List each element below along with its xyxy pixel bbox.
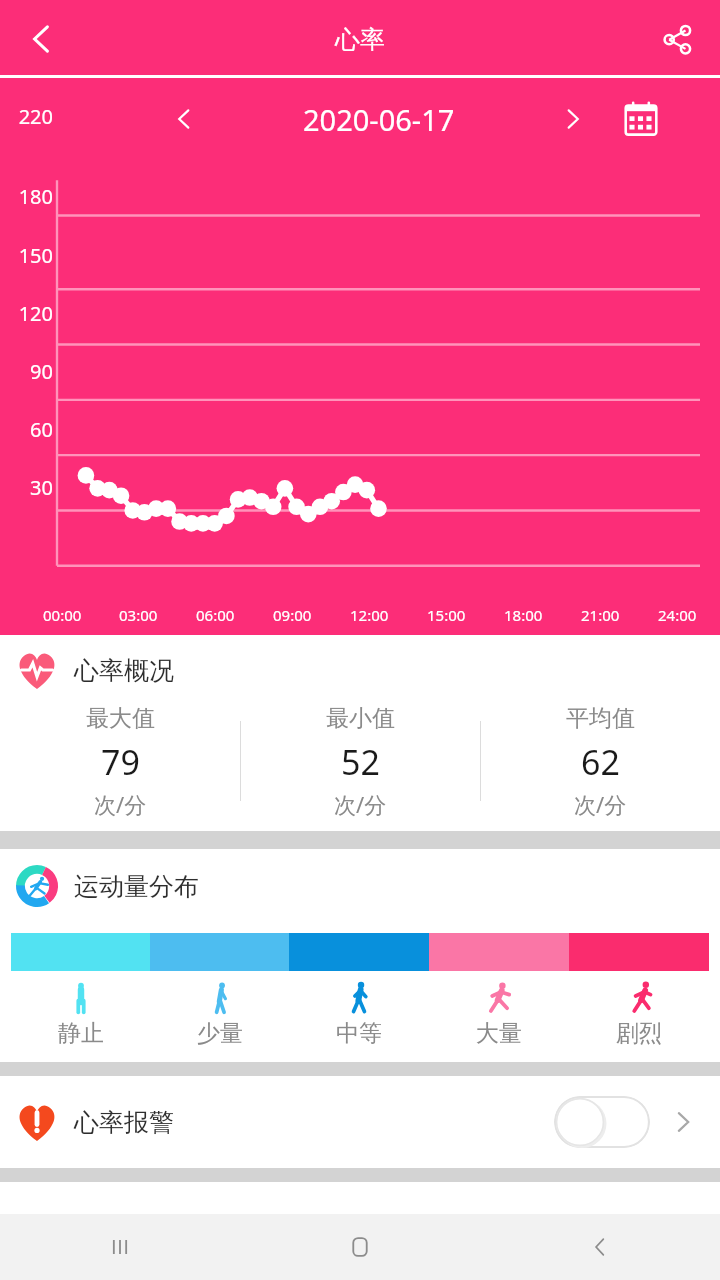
button[interactable]: Home [240,1214,480,1280]
button[interactable]: Next day [544,90,602,148]
staticText: 09:00 [273,605,312,625]
button[interactable]: Share [644,6,710,72]
button[interactable]: 大量 [429,981,569,1048]
button[interactable]: Pick date [612,90,670,148]
staticText: 次/分 [94,789,147,819]
button[interactable]: 中等 [289,981,429,1048]
staticText: 90 [8,358,53,385]
button[interactable]: 剧烈 [569,981,709,1048]
staticText: 少量 [197,1019,243,1048]
staticText: 06:00 [196,605,235,625]
staticText: 24:00 [658,605,697,625]
staticText: 30 [8,474,53,501]
staticText: 心率概况 [74,655,174,686]
staticText: 心率报警 [74,1107,174,1138]
staticText: 150 [8,242,53,269]
staticText: 03:00 [119,605,158,625]
staticText: 2020-06-17 [303,100,455,139]
staticText: 心率 [335,24,385,55]
staticText: 次/分 [574,789,627,819]
staticText: 00:00 [43,605,82,625]
staticText: 最大值 [86,704,155,733]
staticText: 静止 [58,1019,104,1048]
button[interactable]: Open alarm settings [660,1099,706,1145]
button[interactable]: 少量 [150,981,289,1048]
staticText: 最小值 [326,704,395,733]
staticText: 中等 [336,1019,382,1048]
button[interactable]: Heart rate alarm toggle [554,1096,650,1148]
staticText: 平均值 [566,704,635,733]
button[interactable]: 心率报警 [0,1076,720,1168]
staticText: 120 [8,300,53,327]
staticText: 次/分 [334,789,387,819]
button[interactable]: Recent apps [0,1214,240,1280]
staticText: 52 [341,739,380,785]
staticText: 21:00 [581,605,620,625]
button[interactable]: 静止 [11,981,150,1048]
staticText: 运动量分布 [74,871,199,902]
button[interactable]: Previous day [155,90,213,148]
button[interactable]: Back [480,1214,720,1280]
staticText: 62 [581,739,620,785]
staticText: 12:00 [350,605,389,625]
button[interactable]: Back [8,6,74,72]
staticText: 60 [8,416,53,443]
staticText: 大量 [476,1019,522,1048]
staticText: 180 [8,183,53,210]
staticText: 剧烈 [616,1019,662,1048]
staticText: 15:00 [427,605,466,625]
staticText: 18:00 [504,605,543,625]
staticText: 79 [101,739,140,785]
staticText: 220 [8,103,53,130]
